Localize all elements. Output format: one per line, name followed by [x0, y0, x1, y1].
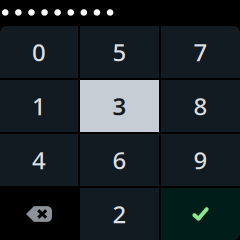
staticText: 9 — [193, 144, 207, 176]
staticText: 8 — [193, 90, 207, 122]
staticText: 2 — [112, 198, 126, 230]
button[interactable]: 6 — [80, 134, 159, 186]
button[interactable]: 0 — [0, 26, 78, 78]
button[interactable]: 8 — [161, 80, 240, 132]
button[interactable]: 2 — [80, 188, 159, 240]
staticText: 4 — [32, 144, 46, 176]
staticText: 7 — [193, 36, 207, 68]
staticText: 5 — [112, 36, 126, 68]
button[interactable]: 1 — [0, 80, 78, 132]
staticText: 1 — [32, 90, 46, 122]
button[interactable]: 4 — [0, 134, 78, 186]
button[interactable]: 7 — [161, 26, 240, 78]
button[interactable]: 5 — [80, 26, 159, 78]
button[interactable]: Confirm — [161, 188, 240, 240]
staticText: 3 — [112, 90, 126, 122]
staticText: 6 — [112, 144, 126, 176]
button[interactable]: 3 — [80, 80, 159, 132]
staticText: 0 — [32, 36, 46, 68]
button[interactable]: 9 — [161, 134, 240, 186]
button[interactable]: Delete — [0, 188, 78, 240]
